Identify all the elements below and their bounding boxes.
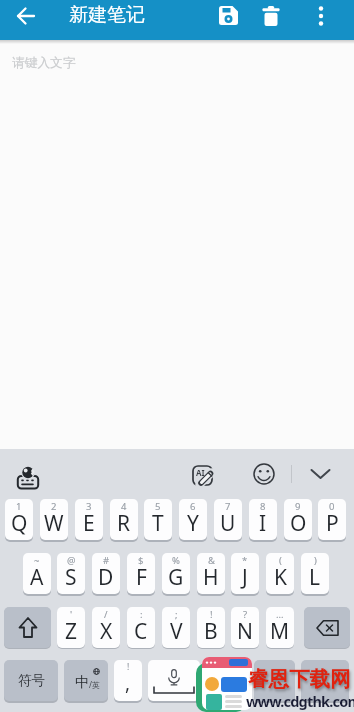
staticText: ? [243, 608, 248, 621]
staticText: @ [67, 554, 76, 567]
staticText: F [136, 563, 147, 592]
button[interactable]: 1 [5, 499, 33, 540]
button[interactable]: ! [114, 660, 142, 701]
staticText: , [125, 670, 131, 696]
button[interactable]: * [231, 553, 259, 594]
staticText: 符号 [18, 672, 45, 689]
staticText: : [140, 608, 143, 621]
button[interactable]: 。 [206, 660, 248, 701]
staticText: 7 [225, 500, 231, 513]
button[interactable] [8, 0, 44, 34]
staticText: U [220, 509, 236, 538]
button[interactable]: : [127, 607, 155, 648]
staticText: … [276, 608, 284, 621]
button[interactable] [4, 607, 51, 648]
button[interactable]: 9 [284, 499, 312, 540]
button[interactable] [303, 462, 337, 486]
staticText: 2 [51, 500, 57, 513]
staticText: 请键入文字 [12, 55, 76, 71]
staticText: 8 [260, 500, 266, 513]
button[interactable]: ) [301, 553, 329, 594]
staticText: 1 [16, 500, 22, 513]
staticText: V [170, 617, 183, 646]
staticText: C [134, 617, 148, 646]
button[interactable] [210, 0, 247, 34]
staticText: X [100, 617, 113, 646]
staticText: 0 [329, 500, 335, 513]
staticText: 4 [121, 500, 127, 513]
button[interactable]: 3 [75, 499, 103, 540]
staticText: T [152, 509, 164, 538]
button[interactable]: $ [127, 553, 155, 594]
staticText: 。 [220, 671, 235, 690]
button[interactable]: / [92, 607, 120, 648]
button[interactable]: ! [197, 607, 225, 648]
staticText: Y [187, 509, 199, 538]
button[interactable]: AI [189, 463, 219, 490]
staticText: ! [210, 608, 213, 621]
button[interactable] [302, 0, 339, 34]
button[interactable]: 2 [40, 499, 68, 540]
button[interactable]: 4 [110, 499, 138, 540]
button[interactable]: 中 [64, 660, 108, 701]
staticText: N [237, 617, 253, 646]
button[interactable]: 5 [144, 499, 172, 540]
staticText: 3 [86, 500, 92, 513]
staticText: J [242, 563, 248, 592]
staticText: P [326, 509, 339, 538]
staticText: 中 [75, 673, 90, 691]
button[interactable]: 7 [214, 499, 242, 540]
button[interactable]: ~ [23, 553, 51, 594]
button[interactable]: 符号 [4, 660, 58, 701]
staticText: I [259, 509, 267, 538]
button[interactable]: ? [231, 607, 259, 648]
button[interactable] [304, 607, 350, 648]
button[interactable]: ' [57, 607, 85, 648]
staticText: 睿恩下载网 [248, 666, 351, 692]
staticText: 5 [155, 500, 161, 513]
staticText: H [203, 563, 219, 592]
staticText: & [208, 554, 215, 567]
button[interactable] [12, 460, 44, 490]
staticText: 9 [295, 500, 301, 513]
staticText: S [65, 563, 77, 592]
button[interactable]: @ [57, 553, 85, 594]
staticText: ; [175, 608, 178, 621]
staticText: R [117, 509, 131, 538]
button[interactable]: 0 [318, 499, 346, 540]
staticText: Z [65, 617, 78, 646]
button[interactable] [301, 660, 349, 701]
staticText: ( [279, 554, 282, 567]
staticText: A [30, 563, 44, 592]
staticText: 新建笔记 [69, 3, 145, 27]
staticText: D [98, 563, 114, 592]
button[interactable]: … [266, 607, 294, 648]
staticText: E [83, 509, 95, 538]
button[interactable]: ( [266, 553, 294, 594]
staticText: ~ [34, 554, 40, 567]
staticText: ! [127, 661, 130, 673]
button[interactable] [254, 660, 295, 701]
staticText: ' [70, 608, 73, 621]
button[interactable]: # [92, 553, 120, 594]
staticText: K [274, 563, 287, 592]
staticText: L [309, 563, 321, 592]
button[interactable]: 6 [179, 499, 207, 540]
staticText: AI [196, 467, 205, 478]
staticText: / [104, 608, 108, 621]
button[interactable]: ; [162, 607, 190, 648]
button[interactable] [250, 460, 278, 488]
staticText: G [168, 563, 184, 592]
staticText: ) [314, 554, 317, 567]
staticText: B [204, 617, 218, 646]
button[interactable] [252, 0, 289, 34]
staticText: O [290, 509, 307, 538]
staticText: M [270, 617, 290, 646]
button[interactable]: & [197, 553, 225, 594]
button[interactable]: 8 [249, 499, 277, 540]
staticText: * [242, 554, 248, 567]
button[interactable] [148, 660, 200, 701]
button[interactable]: % [162, 553, 190, 594]
staticText: www.cdgthk.com [246, 691, 354, 711]
staticText: # [103, 554, 110, 567]
